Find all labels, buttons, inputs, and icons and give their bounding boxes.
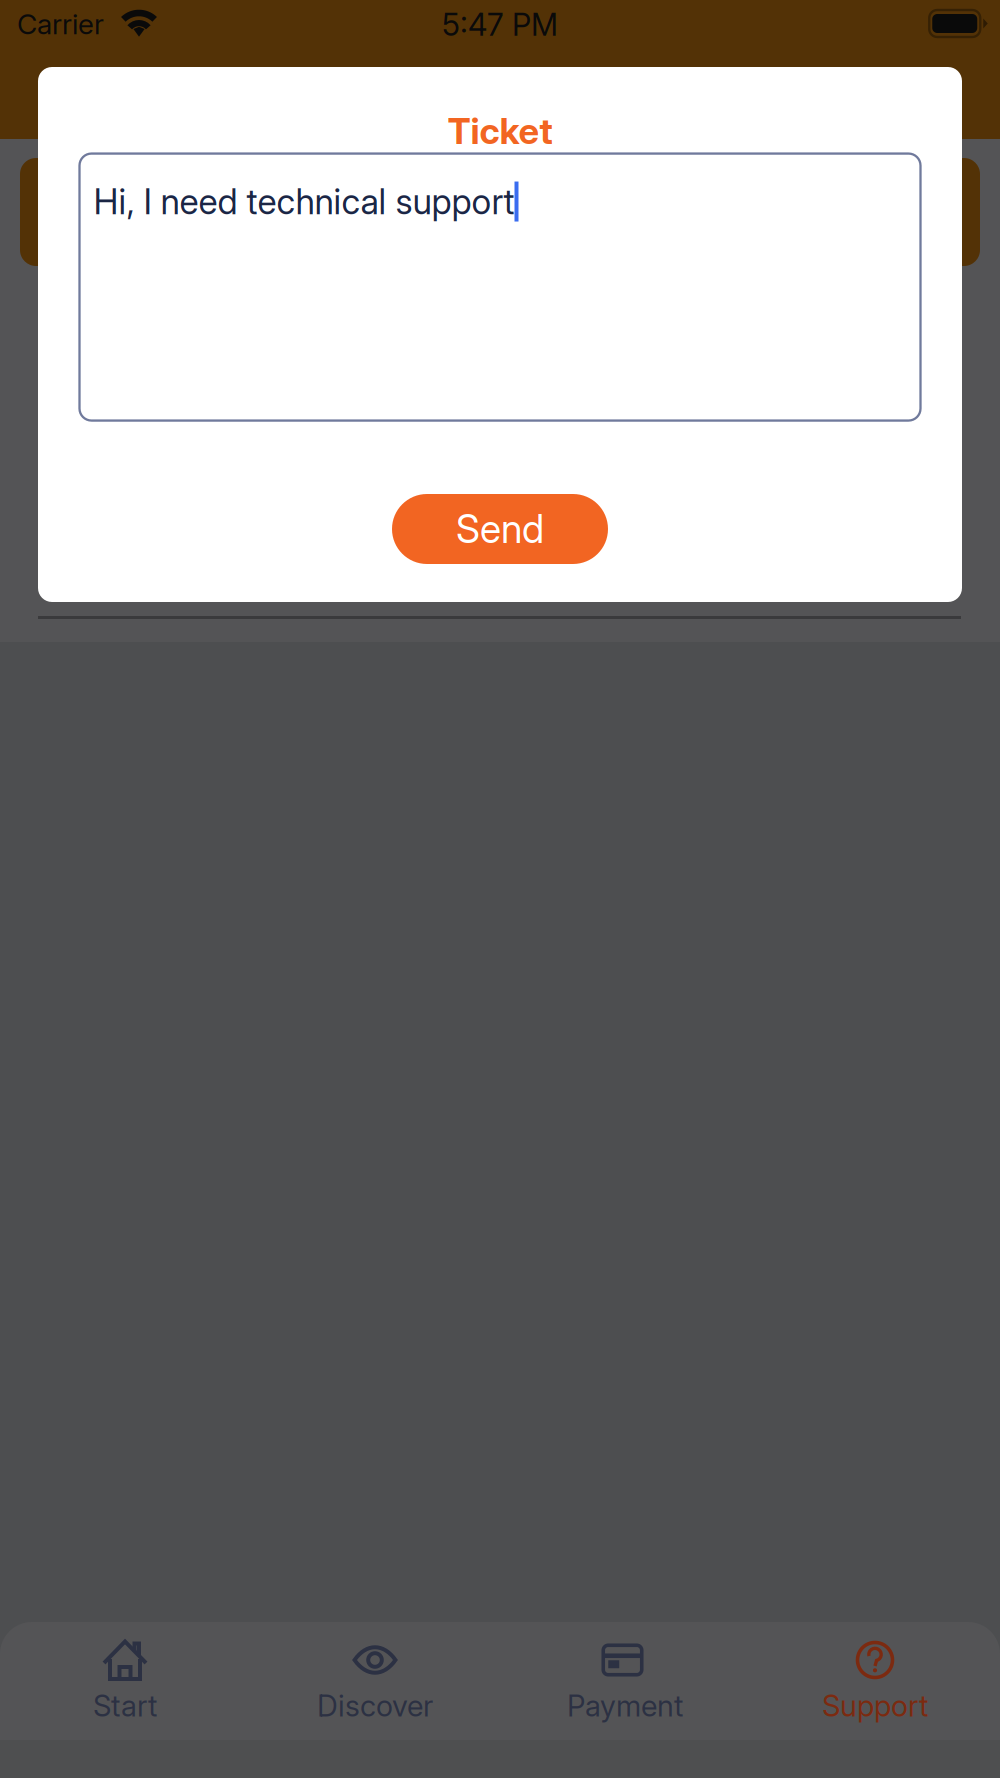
button[interactable]: Discover [250, 1622, 500, 1740]
staticText: Hi, I need technical support [93, 181, 514, 222]
staticText: Send [456, 506, 544, 552]
button[interactable]: Payment [500, 1622, 750, 1740]
button[interactable]: Support [750, 1622, 1000, 1740]
button[interactable]: Start [0, 1622, 250, 1740]
staticText: Start [93, 1688, 157, 1723]
staticText: Ticket [447, 109, 552, 153]
staticText: Discover [317, 1688, 433, 1723]
staticText: Carrier [17, 7, 104, 41]
button[interactable]: Send [392, 494, 608, 564]
staticText: Payment [567, 1688, 683, 1723]
staticText: 5:47 PM [442, 6, 558, 43]
staticText: Support [822, 1688, 928, 1723]
